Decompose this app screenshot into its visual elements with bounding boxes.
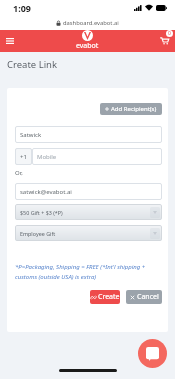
button[interactable]: Employee Gift [15,225,162,241]
staticText: 1:09 [13,2,31,14]
staticText: Employee Gift [20,230,56,237]
staticText: $50 Gift + $3 (*P) [20,209,63,216]
staticText: customs (outside USA) is extra) [15,273,97,281]
button[interactable]: $50 Gift + $3 (*P) [15,204,162,220]
staticText: Create Link [7,58,58,71]
staticText: 0 [168,30,171,37]
button[interactable]: Shopping cart [157,34,171,48]
button[interactable]: Open chat [138,339,167,368]
staticText: *P=Packaging, Shipping = FREE (*Int'l sh… [15,263,146,271]
button[interactable]: Menu [2,33,18,49]
button[interactable]: Create [90,290,120,304]
staticText: Create [98,292,120,302]
staticText: evabot [76,41,99,51]
staticText: +1 [20,153,27,161]
staticText: Cancel [137,292,159,302]
button[interactable]: Cancel [126,290,162,304]
staticText: dashboard.evabot.ai [63,19,119,27]
staticText: Or, [15,169,23,177]
staticText: Satwick [20,131,42,139]
staticText: Add Recipient(s) [111,105,157,113]
staticText: satwick@evabot.ai [20,188,72,196]
staticText: Mobile [37,153,57,161]
button[interactable]: Add Recipient(s) [100,103,162,115]
